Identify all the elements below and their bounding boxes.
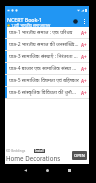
button[interactable]: KD Beddings: [5, 146, 89, 164]
staticText: A+: [81, 30, 87, 36]
button[interactable]: Night mode: [71, 17, 80, 26]
button[interactable]: पाठ-6 सांस्कृतिक विविधता की चुनौतियाँ: [5, 87, 89, 98]
staticText: A+: [81, 66, 87, 72]
button[interactable]: OPEN: [72, 151, 87, 160]
staticText: पाठ-4 बाजार एक सामाजिक संस्था के रूप में: [9, 65, 80, 72]
staticText: A+: [81, 90, 87, 96]
staticText: NCERT Book-1: [7, 16, 43, 23]
staticText: Home Decorations: [6, 154, 61, 162]
button[interactable]: पाठ-2 भारतीय समाज की जनसांख्यिकीय संरचना: [5, 39, 89, 50]
staticText: पाठ-3 सामाजिक संस्थाएँ : निरंतरता एवं पर…: [9, 53, 80, 60]
button[interactable]: पाठ-5 सामाजिक विषमता एवं बहिष्कार: [5, 75, 89, 86]
button[interactable]: पाठ-3 सामाजिक संस्थाएँ : निरंतरता एवं पर…: [5, 51, 89, 62]
button[interactable]: पाठ-1 भारतीय समाज : एक परिचय: [5, 27, 89, 38]
staticText: A+: [81, 54, 87, 60]
staticText: पाठ-2 भारतीय समाज की जनसांख्यिकीय संरचना: [9, 41, 80, 48]
staticText: A+: [81, 78, 87, 84]
staticText: 12वीं भारतीय समाजशास्त्र: [11, 23, 51, 27]
button[interactable]: Recent apps: [63, 164, 76, 177]
button[interactable]: More options: [80, 18, 88, 26]
button[interactable]: Home: [41, 164, 54, 177]
staticText: A+: [81, 42, 87, 48]
staticText: OPEN: [74, 153, 85, 158]
staticText: पाठ-5 सामाजिक विषमता एवं बहिष्कार: [9, 77, 80, 84]
staticText: पाठ-1 भारतीय समाज : एक परिचय: [9, 29, 80, 36]
button[interactable]: Back: [19, 164, 32, 177]
staticText: KD Beddings: [6, 149, 26, 153]
staticText: Install: [35, 149, 44, 153]
staticText: पाठ-6 सांस्कृतिक विविधता की चुनौतियाँ: [9, 89, 80, 96]
button[interactable]: पाठ-4 बाजार एक सामाजिक संस्था के रूप में: [5, 63, 89, 74]
